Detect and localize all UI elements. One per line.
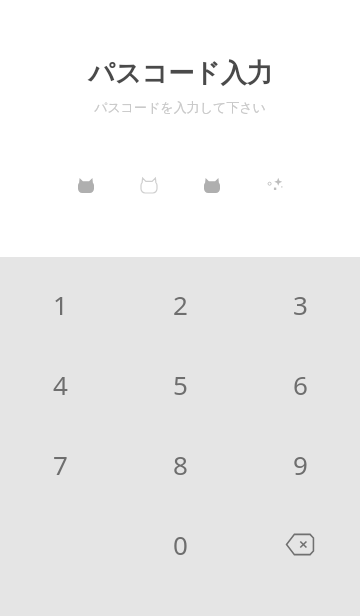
button[interactable]: 3 [240, 264, 360, 344]
staticText: パスコード入力 [88, 57, 273, 90]
button[interactable]: 0 [120, 504, 240, 584]
staticText: 7 [53, 447, 68, 482]
button[interactable]: 6 [240, 344, 360, 424]
staticText: 2 [173, 287, 188, 322]
staticText: 8 [173, 447, 188, 482]
staticText: 5 [173, 367, 188, 402]
button[interactable]: 5 [120, 344, 240, 424]
button[interactable]: 7 [0, 424, 120, 504]
staticText: パスコードを入力して下さい [94, 99, 266, 115]
button[interactable]: 4 [0, 344, 120, 424]
button[interactable]: 9 [240, 424, 360, 504]
staticText: 3 [293, 287, 308, 322]
staticText: 0 [173, 527, 188, 562]
staticText: 9 [293, 447, 308, 482]
staticText: 6 [293, 367, 308, 402]
staticText: 1 [53, 287, 68, 322]
button[interactable]: 8 [120, 424, 240, 504]
button[interactable]: Backspace [240, 504, 360, 584]
button[interactable]: 1 [0, 264, 120, 344]
button[interactable]: 2 [120, 264, 240, 344]
staticText: 4 [53, 367, 68, 402]
